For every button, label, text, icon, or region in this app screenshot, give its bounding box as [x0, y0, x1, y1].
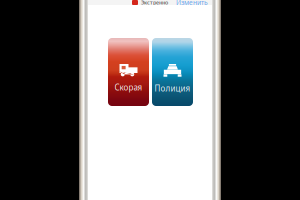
button[interactable]: Скорая — [108, 38, 149, 106]
staticText: Изменить — [176, 0, 208, 7]
staticText: Скорая — [114, 82, 142, 93]
button[interactable]: Изменить — [176, 0, 212, 7]
button[interactable]: Полиция — [152, 38, 193, 106]
staticText: Экстренно — [141, 0, 168, 6]
staticText: Полиция — [154, 83, 190, 94]
